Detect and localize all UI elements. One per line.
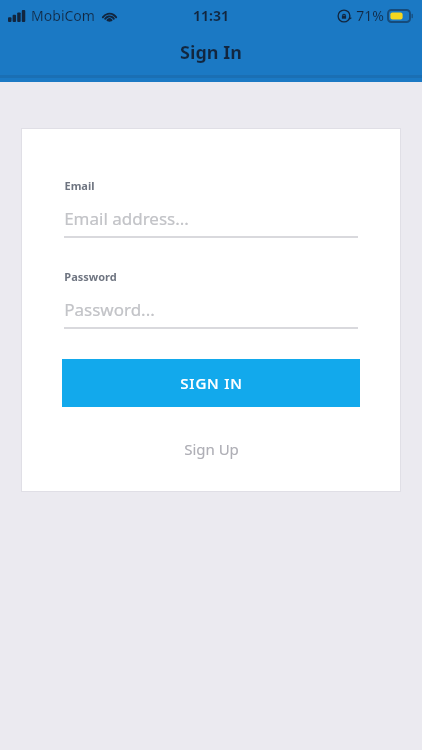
staticText: 11:31 <box>193 6 229 25</box>
button[interactable]: Password... <box>64 296 358 322</box>
button[interactable]: SIGN IN <box>62 359 360 407</box>
button[interactable]: Sign Up <box>22 434 400 464</box>
staticText: Email address... <box>64 207 189 230</box>
staticText: Sign In <box>180 40 242 65</box>
staticText: Sign Up <box>184 439 239 459</box>
staticText: SIGN IN <box>180 373 243 393</box>
staticText: 71% <box>356 6 384 25</box>
button[interactable]: Email address... <box>64 205 358 231</box>
staticText: Password <box>64 269 117 284</box>
other: Rotation lock <box>337 9 351 23</box>
staticText: MobiCom <box>31 6 95 25</box>
staticText: Password... <box>64 298 155 321</box>
staticText: Email <box>64 178 95 193</box>
